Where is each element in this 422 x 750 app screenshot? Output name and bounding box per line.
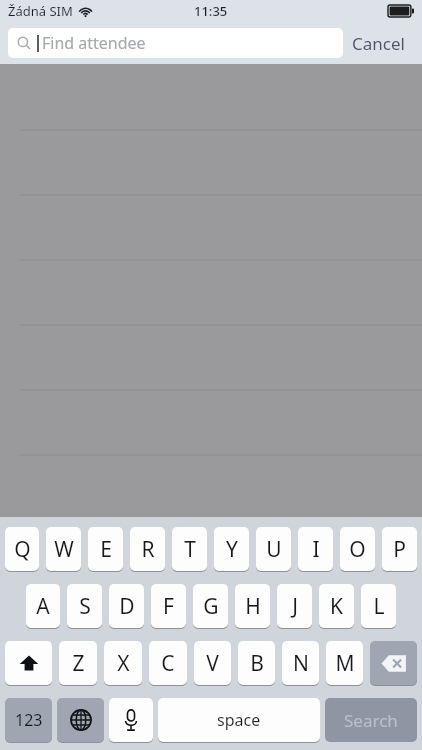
staticText: C [161, 649, 175, 678]
button[interactable]: R [130, 527, 165, 571]
staticText: K [330, 592, 343, 621]
button[interactable]: space [158, 698, 320, 742]
button[interactable]: S [67, 584, 102, 628]
button[interactable]: M [326, 641, 363, 685]
staticText: I [312, 535, 320, 564]
staticText: S [79, 592, 91, 621]
button[interactable]: B [238, 641, 275, 685]
other: Dictation [109, 698, 153, 742]
button[interactable]: G [193, 584, 228, 628]
other: Backspace [370, 641, 417, 685]
button[interactable]: C [149, 641, 187, 685]
staticText: L [373, 592, 385, 621]
staticText: 11:35 [194, 2, 228, 20]
staticText: Find attendee [42, 32, 146, 54]
staticText: O [349, 535, 366, 564]
button[interactable] [5, 641, 52, 685]
button[interactable]: Find attendee [8, 28, 343, 58]
staticText: Žádná SIM [8, 2, 73, 20]
button[interactable]: V [194, 641, 231, 685]
staticText: J [292, 592, 298, 621]
button[interactable]: N [282, 641, 319, 685]
staticText: E [100, 535, 112, 564]
button[interactable]: P [382, 527, 417, 571]
button[interactable]: K [319, 584, 354, 628]
staticText: D [119, 592, 135, 621]
button[interactable]: U [256, 527, 291, 571]
button[interactable]: Search [325, 698, 417, 742]
button[interactable]: 123 [5, 698, 52, 742]
button[interactable]: A [26, 584, 60, 628]
staticText: H [245, 592, 261, 621]
staticText: A [36, 592, 50, 621]
staticText: F [163, 592, 174, 621]
button[interactable]: Q [5, 527, 39, 571]
staticText: Q [14, 535, 31, 564]
button[interactable]: T [172, 527, 207, 571]
staticText: R [141, 535, 155, 564]
staticText: X [117, 649, 130, 678]
button[interactable]: W [46, 527, 81, 571]
button[interactable]: O [340, 527, 375, 571]
other: Change keyboard [57, 698, 104, 742]
staticText: Cancel [352, 32, 405, 55]
button[interactable]: H [235, 584, 270, 628]
button[interactable] [370, 641, 417, 685]
button[interactable]: E [88, 527, 123, 571]
staticText: Z [72, 649, 85, 678]
button[interactable] [57, 698, 104, 742]
staticText: space [217, 709, 261, 731]
staticText: T [184, 535, 196, 564]
other: Shift [5, 641, 52, 685]
staticText: B [250, 649, 264, 678]
button[interactable]: L [361, 584, 396, 628]
button[interactable]: Y [214, 527, 249, 571]
staticText: Search [344, 709, 398, 732]
button[interactable]: D [109, 584, 144, 628]
staticText: 123 [15, 709, 43, 731]
button[interactable]: X [104, 641, 142, 685]
staticText: W [54, 535, 74, 564]
staticText: U [266, 535, 282, 564]
button[interactable]: Cancel [343, 26, 414, 60]
staticText: N [293, 649, 309, 678]
staticText: M [335, 649, 355, 678]
button[interactable]: Z [59, 641, 97, 685]
staticText: Y [226, 535, 238, 564]
staticText: P [393, 535, 406, 564]
button[interactable] [109, 698, 153, 742]
staticText: G [203, 592, 219, 621]
button[interactable]: F [151, 584, 186, 628]
staticText: V [206, 649, 219, 678]
button[interactable]: J [277, 584, 312, 628]
button[interactable]: I [298, 527, 333, 571]
